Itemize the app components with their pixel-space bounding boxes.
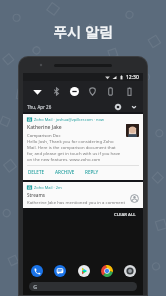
button[interactable]: Messages <box>52 263 67 278</box>
button[interactable]: ARCHIVE <box>54 167 76 177</box>
staticText: Streams <box>27 192 45 198</box>
staticText: DELETE <box>28 169 45 175</box>
staticText: REPLY <box>85 169 99 175</box>
staticText: Zoho Mail · 2m <box>34 185 62 190</box>
staticText: Hello Josh, Thank you for considering Zo… <box>27 138 114 144</box>
button[interactable]: Play Store <box>76 263 91 278</box>
button[interactable]: Location <box>85 84 99 98</box>
button[interactable]: Expand <box>129 102 139 112</box>
button[interactable]: Phone <box>29 263 44 278</box>
button[interactable]: Bluetooth <box>49 84 63 98</box>
staticText: 푸시 알림 <box>53 22 113 41</box>
button[interactable]: Zoho Mail · 2m <box>23 182 143 208</box>
button[interactable]: Battery saver <box>122 84 136 98</box>
button[interactable]: CLEAR ALL <box>112 209 138 219</box>
staticText: Mail. Here is the comparison document th… <box>27 144 124 150</box>
staticText: ARCHIVE <box>55 169 75 175</box>
button[interactable]: DELETE <box>27 167 46 177</box>
staticText: Katherine Jake <box>27 124 62 131</box>
button[interactable]: Camera <box>122 263 137 278</box>
button[interactable]: Do not disturb <box>67 84 81 98</box>
staticText: G <box>33 283 38 291</box>
button[interactable]: REPLY <box>84 167 100 177</box>
staticText: for, and please get in touch with us if … <box>27 150 124 156</box>
button[interactable]: Chrome <box>99 263 114 278</box>
button[interactable]: Zoho Mail · joshua@zpilker.com · now <box>23 114 143 180</box>
staticText: 12:30 <box>126 74 139 81</box>
staticText: Thu, Apr 26 <box>27 104 52 110</box>
button[interactable]: Cast <box>103 84 117 98</box>
button[interactable]: Settings <box>113 102 123 112</box>
staticText: Zoho Mail · joshua@zpilker.com · now <box>34 117 104 122</box>
button[interactable]: Search <box>29 282 137 291</box>
button[interactable]: Wi-Fi <box>30 84 44 98</box>
staticText: Comparison Doc <box>27 132 61 138</box>
staticText: on the new features. www.zoho.com <box>27 156 101 162</box>
staticText: CLEAR ALL <box>114 211 136 217</box>
staticText: Katherine Jake has mentioned you in a co… <box>27 199 125 205</box>
